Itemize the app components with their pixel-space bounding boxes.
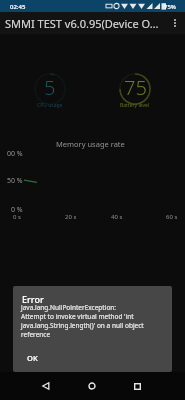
staticText: 02:45 <box>10 3 26 11</box>
button[interactable]: Back <box>23 372 69 400</box>
staticText: java.lang.NullPointerException: Attempt … <box>21 303 166 339</box>
staticText: 0 % <box>11 205 23 215</box>
button[interactable]: Battery level <box>118 72 152 106</box>
staticText: Error <box>22 293 44 305</box>
staticText: Memory usage rate <box>56 139 125 149</box>
button[interactable]: Recents <box>114 372 160 400</box>
staticText: OK <box>27 353 38 363</box>
staticText: SMMI TEST v6.0.95(Device O… <box>5 16 159 31</box>
staticText: 20 s <box>65 213 77 221</box>
staticText: 40 s <box>111 213 123 221</box>
staticText: Battery level <box>120 102 150 108</box>
staticText: CPU usage <box>37 102 63 108</box>
staticText: 60 s <box>166 213 178 221</box>
button[interactable]: OK <box>22 350 43 366</box>
staticText: 00 % <box>7 149 23 159</box>
staticText: 75 <box>124 74 147 101</box>
button[interactable]: Home <box>69 372 115 400</box>
staticText: 50 % <box>7 176 23 186</box>
button[interactable]: CPU usage <box>33 72 67 106</box>
button[interactable]: More options <box>165 12 185 34</box>
staticText: 0 s <box>13 213 21 221</box>
staticText: 75% <box>164 3 176 11</box>
staticText: 5 <box>44 74 56 101</box>
